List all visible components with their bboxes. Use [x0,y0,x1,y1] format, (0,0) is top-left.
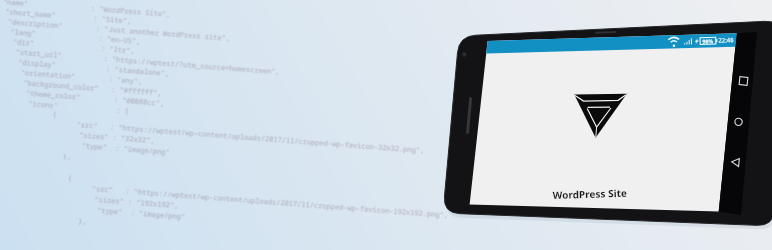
button[interactable]: WordPress PWA banner [0,0,772,250]
other: WordPress PWA banner [0,0,772,250]
